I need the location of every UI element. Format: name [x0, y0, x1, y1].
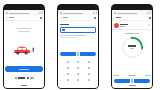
- button[interactable]: [60, 27, 96, 33]
- button[interactable]: Address bar: [5, 11, 38, 14]
- button[interactable]: [6, 15, 42, 20]
- button[interactable]: Key 11: [75, 77, 81, 83]
- button[interactable]: Key 1: [65, 59, 71, 65]
- button[interactable]: Key 7: [65, 71, 71, 77]
- button[interactable]: Key 6: [86, 65, 92, 71]
- button[interactable]: Key 5: [75, 65, 81, 71]
- button[interactable]: Address bar: [113, 11, 146, 14]
- button[interactable]: [60, 52, 96, 56]
- button[interactable]: Key 10: [65, 77, 71, 83]
- button[interactable]: [113, 15, 151, 20]
- button[interactable]: Key 12: [86, 77, 92, 83]
- button[interactable]: [5, 66, 43, 72]
- button[interactable]: Key 4: [65, 65, 71, 71]
- button[interactable]: Key 2: [75, 59, 81, 65]
- button[interactable]: Key 8: [75, 71, 81, 77]
- button[interactable]: Key 3: [86, 59, 92, 65]
- button[interactable]: Key 9: [86, 71, 92, 77]
- button[interactable]: [114, 21, 150, 29]
- button[interactable]: Address bar: [59, 11, 92, 14]
- button[interactable]: [60, 15, 96, 20]
- button[interactable]: [114, 79, 150, 83]
